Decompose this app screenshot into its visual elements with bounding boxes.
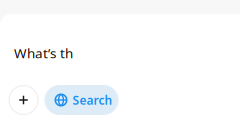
staticText: Search: [72, 92, 112, 108]
button[interactable]: Add attachment: [8, 85, 38, 115]
button[interactable]: Search: [44, 85, 118, 115]
staticText: What’s th: [14, 44, 73, 62]
